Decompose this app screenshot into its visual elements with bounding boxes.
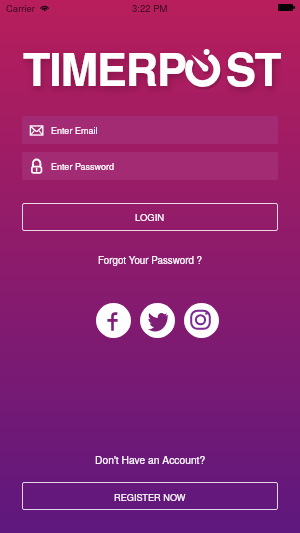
staticText: Enter Password <box>51 160 115 173</box>
staticText: TIMERP <box>23 36 186 96</box>
button[interactable]: Enter Password <box>22 152 278 180</box>
staticText: LOGIN <box>135 210 165 224</box>
button[interactable]: Enter Email <box>22 116 278 144</box>
button[interactable]: Instagram <box>184 303 219 338</box>
button[interactable]: Facebook <box>96 303 131 338</box>
staticText: REGISTER NOW <box>114 490 186 503</box>
staticText: Forgot Your Password ? <box>98 253 203 267</box>
button[interactable]: REGISTER NOW <box>22 482 278 510</box>
staticText: Carrier <box>6 1 36 15</box>
button[interactable]: LOGIN <box>22 203 278 231</box>
staticText: 3:22 PM <box>132 1 168 15</box>
staticText: ST <box>226 36 281 96</box>
staticText: Enter Email <box>51 124 98 137</box>
staticText: Don't Have an Account? <box>95 452 206 467</box>
button[interactable]: Twitter <box>140 303 175 338</box>
